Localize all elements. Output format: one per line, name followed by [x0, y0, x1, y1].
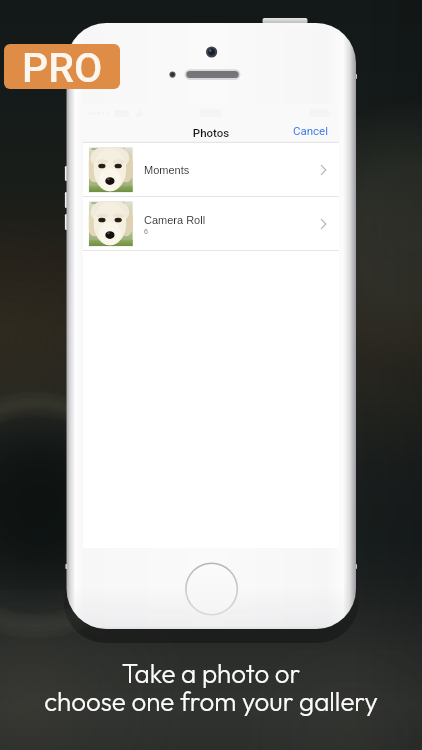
staticText: 6 — [144, 228, 148, 236]
staticText: Take a photo or choose one from your gal… — [0, 657, 422, 718]
staticText: Moments — [144, 164, 190, 176]
button[interactable]: Cancel — [283, 118, 339, 142]
staticText: Cancel — [293, 124, 329, 137]
staticText: PRO — [22, 44, 103, 89]
staticText: Camera Roll — [144, 214, 206, 226]
button[interactable]: Camera Roll — [83, 197, 339, 251]
staticText: Photos — [83, 126, 339, 139]
button[interactable]: Moments — [83, 143, 339, 197]
button[interactable]: PRO — [4, 44, 120, 89]
